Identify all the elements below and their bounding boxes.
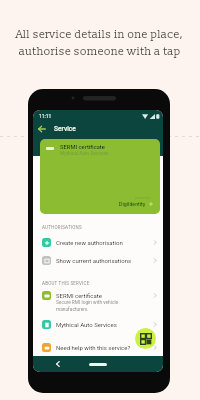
button[interactable]: Scan QR code [135,328,156,349]
staticText: Mythical Auto Services [56,321,117,328]
staticText: powered by [135,196,151,200]
staticText: Show current authorisations [56,257,132,264]
staticText: Secure RMI login with vehicle manufactur… [56,300,119,312]
staticText: DigiIdentity [119,201,146,207]
staticText: SERMI certificate [56,292,102,299]
staticText: All service details in one place, [16,27,184,41]
staticText: SERMI certificate [60,144,105,151]
staticText: ABOUT THIS SERVICE [42,281,90,286]
staticText: authorise someone with a tap [19,44,181,58]
button[interactable]: Show current authorisations [33,255,163,266]
button[interactable]: Need help with this service? [33,342,163,353]
button[interactable]: Create new authorisation [33,237,163,248]
staticText: Mythical Auto Services [60,151,109,157]
staticText: Create new authorisation [56,239,123,246]
staticText: 11:11 [39,114,52,120]
button[interactable]: Back [35,122,49,136]
button[interactable]: SERMI certificate [40,139,160,214]
button[interactable]: SERMI certificate [33,290,163,311]
staticText: Service [54,125,76,133]
staticText: Need help with this service? [56,344,131,351]
button[interactable]: Back [53,359,63,369]
staticText: AUTHORISATIONS [42,225,82,230]
button[interactable]: Mythical Auto Services [33,319,163,330]
